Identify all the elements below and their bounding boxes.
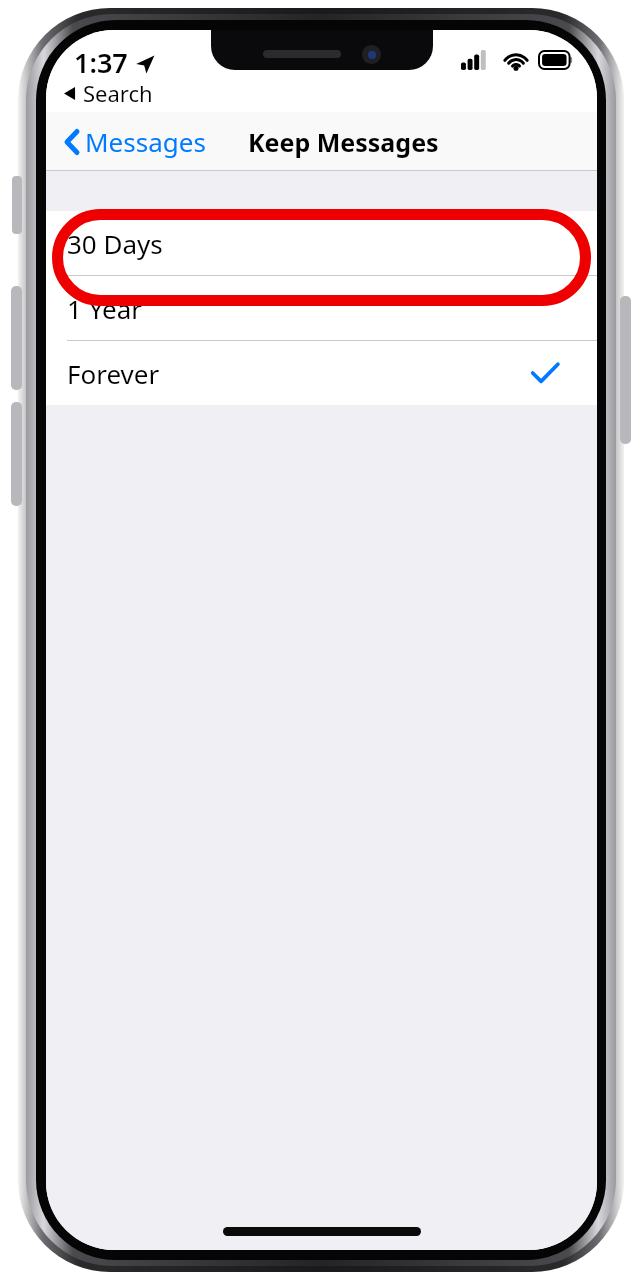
staticText: Search — [83, 78, 153, 108]
other: Selected — [531, 362, 559, 384]
staticText: 30 Days — [67, 226, 163, 261]
staticText: Forever — [67, 356, 160, 391]
button[interactable]: 30 Days — [46, 211, 597, 275]
button[interactable]: Forever — [46, 341, 597, 405]
button[interactable]: Search — [60, 76, 157, 110]
button[interactable]: 1 Year — [46, 276, 597, 340]
staticText: Keep Messages — [248, 125, 439, 159]
staticText: 1 Year — [67, 291, 143, 326]
button[interactable]: Messages — [56, 118, 214, 165]
staticText: 1:37 — [74, 44, 128, 81]
staticText: Messages — [85, 124, 206, 159]
